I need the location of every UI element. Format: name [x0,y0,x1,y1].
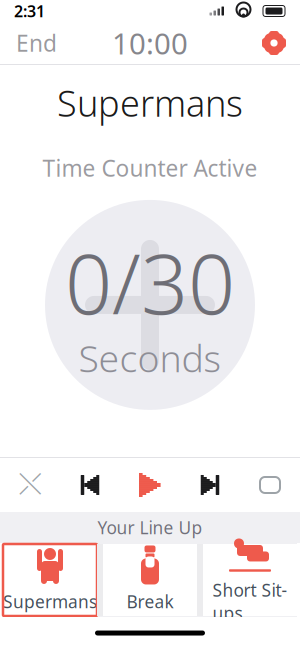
staticText: 2:31 [14,0,45,22]
button[interactable]: Settings [254,25,294,61]
button[interactable]: Short Sit-ups [203,544,297,616]
staticText: End [16,28,57,58]
button[interactable]: Play [120,462,180,508]
button[interactable]: Next [180,462,240,508]
button[interactable]: Supermans [3,544,97,616]
button[interactable]: Shuffle [0,462,60,508]
button[interactable]: Break [103,544,197,616]
button[interactable]: End [6,22,67,64]
staticText: Seconds [78,333,221,383]
staticText: Time Counter Active [42,153,257,183]
staticText: Supermans [3,590,97,613]
staticText: Short Sit-ups [212,578,287,624]
staticText: 0/30 [65,227,235,337]
staticText: Supermans [57,79,243,127]
staticText: Your Line Up [97,516,202,539]
staticText: Break [126,590,173,613]
staticText: 10:00 [112,23,188,62]
button[interactable]: Previous [60,462,120,508]
button[interactable]: Repeat [240,462,300,508]
staticText: ⤬ [18,471,41,499]
